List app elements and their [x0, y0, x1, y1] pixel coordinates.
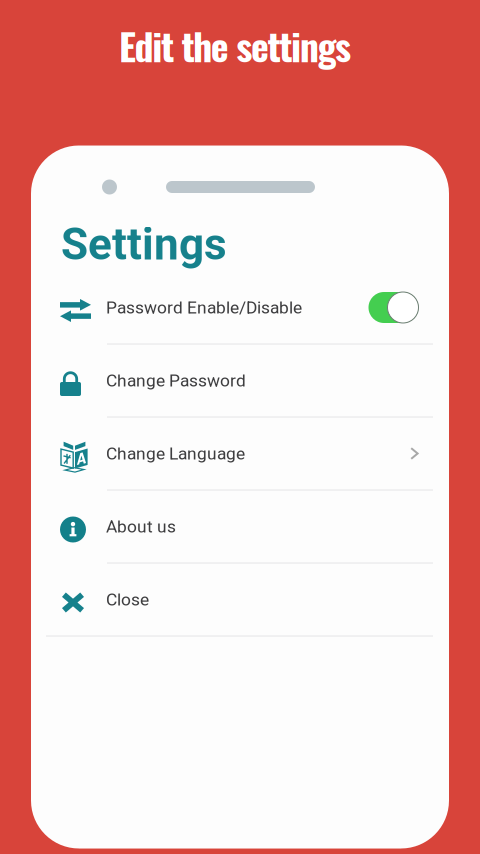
staticText: Settings	[61, 219, 227, 270]
button[interactable]: Close	[31, 563, 449, 635]
staticText: About us	[106, 516, 176, 537]
button[interactable]: About us	[31, 490, 449, 562]
staticText: Edit the settings	[119, 17, 351, 73]
staticText: Change Password	[106, 370, 246, 391]
button[interactable]: Password Enable/Disable	[31, 271, 449, 343]
staticText: Password Enable/Disable	[106, 297, 302, 318]
button[interactable]: Password Enable/Disable	[368, 290, 419, 324]
staticText: Change Language	[106, 443, 245, 464]
button[interactable]: Change Language	[31, 417, 449, 489]
button[interactable]: Change Password	[31, 344, 449, 416]
staticText: Close	[106, 589, 149, 610]
